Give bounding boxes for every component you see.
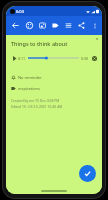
button[interactable]: No reminder xyxy=(10,73,43,81)
staticText: Edited 16 : 03 3.5.2021 10:40 AM xyxy=(11,104,63,109)
staticText: 0:11 xyxy=(18,56,26,61)
button[interactable]: Back xyxy=(8,18,23,33)
button[interactable]: Play recording xyxy=(10,53,98,63)
button[interactable]: Add image xyxy=(36,19,49,32)
button[interactable]: Labels xyxy=(49,19,62,32)
staticText: inspirations xyxy=(18,86,41,91)
button[interactable]: Change color xyxy=(23,19,36,32)
staticText: Created by me 15 Dec 4:58 PM xyxy=(11,98,60,103)
staticText: No reminder xyxy=(18,75,42,80)
staticText: 0:30 xyxy=(81,56,89,61)
staticText: Things to think about xyxy=(11,40,68,47)
button[interactable]: Play recording xyxy=(10,54,18,62)
button[interactable]: inspirations xyxy=(10,84,42,92)
button[interactable]: Share xyxy=(75,19,88,32)
button[interactable]: Save note xyxy=(79,165,96,182)
staticText: 6:03 xyxy=(16,9,24,14)
button[interactable]: More options xyxy=(88,19,101,32)
button[interactable]: Archive xyxy=(62,19,75,32)
button[interactable]: Delete recording xyxy=(91,55,98,62)
